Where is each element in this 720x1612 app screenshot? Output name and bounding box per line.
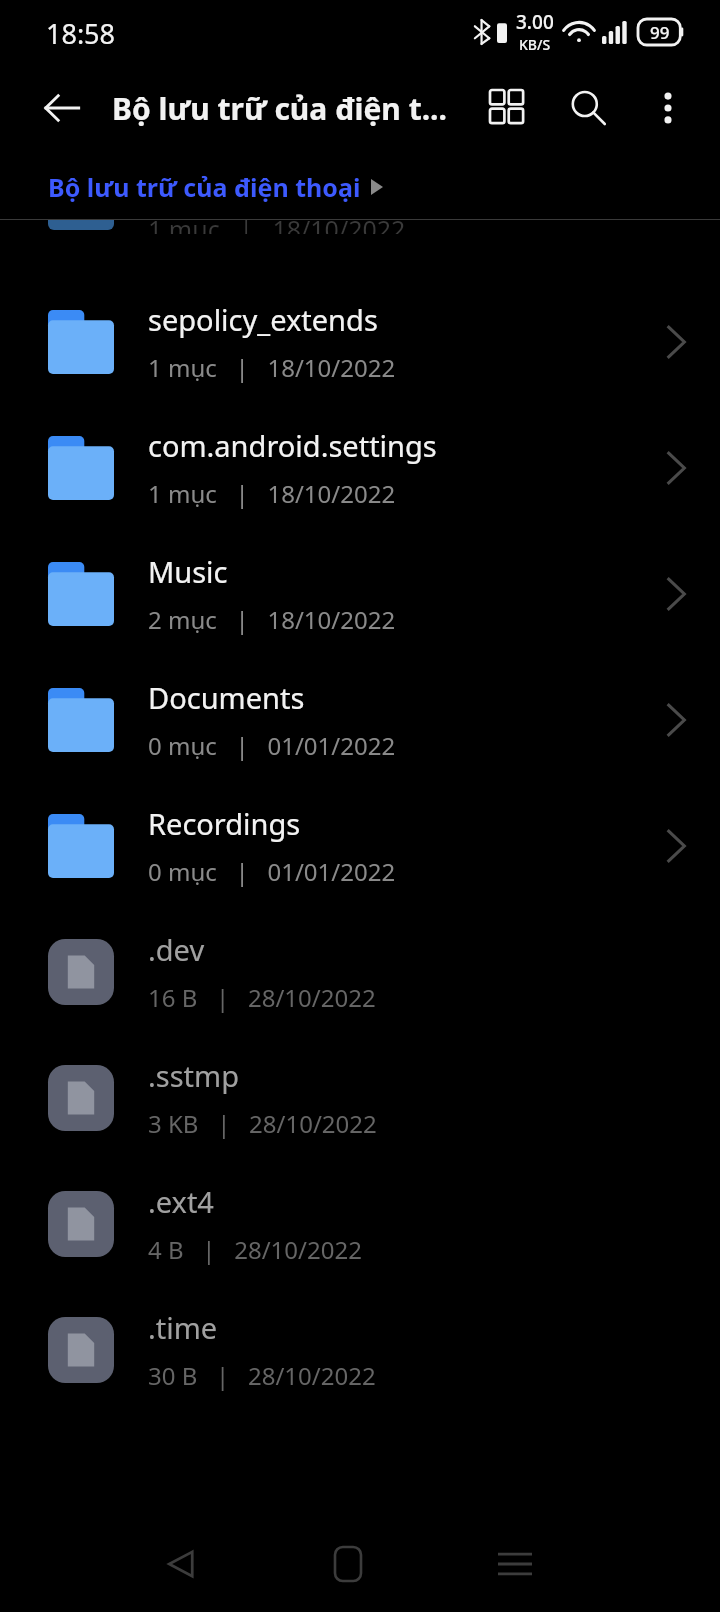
staticText: .ext4 <box>148 1182 214 1221</box>
button[interactable]: Bộ lưu trữ của điện thoại <box>40 166 391 208</box>
staticText: .sstmp <box>148 1056 239 1095</box>
button[interactable]: sepolicy_extends <box>0 279 720 405</box>
staticText: 99 <box>650 21 670 44</box>
button[interactable]: Back <box>132 1516 232 1612</box>
button[interactable]: Home <box>298 1516 398 1612</box>
staticText: 18:58 <box>46 15 116 52</box>
staticText: KB/S <box>519 35 551 54</box>
staticText: 4 B | 28/10/2022 <box>148 1233 362 1266</box>
button[interactable]: Search <box>548 68 628 148</box>
staticText: 30 B | 28/10/2022 <box>148 1359 376 1392</box>
staticText: 16 B | 28/10/2022 <box>148 981 376 1014</box>
button[interactable]: .dev <box>0 909 720 1035</box>
button[interactable]: Documents <box>0 657 720 783</box>
staticText: 2 mục | 18/10/2022 <box>148 603 396 636</box>
button[interactable]: More options <box>628 68 708 148</box>
staticText: 0 mục | 01/01/2022 <box>148 729 396 762</box>
button[interactable]: com.android.settings <box>0 405 720 531</box>
staticText: Bộ lưu trữ của điện thoại <box>48 170 361 204</box>
staticText: Music <box>148 552 228 591</box>
button[interactable]: Music <box>0 531 720 657</box>
staticText: sepolicy_extends <box>148 300 378 339</box>
button[interactable]: .sstmp <box>0 1035 720 1161</box>
staticText: 1 mục | 18/10/2022 <box>148 477 396 510</box>
staticText: com.android.settings <box>148 426 437 465</box>
button[interactable]: .ext4 <box>0 1161 720 1287</box>
button[interactable]: Recordings <box>0 783 720 909</box>
staticText: 3 KB | 28/10/2022 <box>148 1107 377 1140</box>
button[interactable]: Back <box>28 74 96 142</box>
staticText: 3.00 <box>516 9 554 35</box>
staticText: Bộ lưu trữ của điện t... <box>112 88 447 129</box>
staticText: .dev <box>148 930 205 969</box>
button[interactable]: Grid view <box>468 68 548 148</box>
staticText: 1 mục | 18/10/2022 <box>148 351 396 384</box>
button[interactable]: .time <box>0 1287 720 1413</box>
staticText: 0 mục | 01/01/2022 <box>148 855 396 888</box>
staticText: Recordings <box>148 804 301 843</box>
staticText: Documents <box>148 678 305 717</box>
staticText: .time <box>148 1308 218 1347</box>
button[interactable]: Recents <box>465 1516 565 1612</box>
staticText: 1 mục | 18/10/2022 <box>148 212 406 234</box>
